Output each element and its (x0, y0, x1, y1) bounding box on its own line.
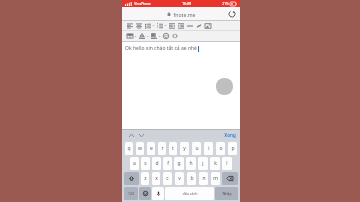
button[interactable]: z (141, 172, 149, 185)
staticText: fnote.me (173, 11, 196, 18)
button[interactable]: 123 (124, 187, 138, 200)
button[interactable]: ALIGN_LEFT (125, 21, 134, 30)
staticText: i (208, 145, 210, 152)
staticText: 16:09 (182, 1, 191, 6)
staticText: e (150, 145, 153, 152)
staticText: l (226, 160, 228, 167)
button[interactable]: j (198, 157, 208, 170)
button[interactable]: LIST_BULLET (143, 21, 152, 30)
staticText: g (177, 160, 181, 167)
button[interactable]: INDENT_R (176, 21, 185, 30)
button[interactable]: CARET (134, 31, 137, 41)
staticText: Nhập (222, 191, 232, 196)
staticText: f (167, 160, 169, 167)
button[interactable]: Emoji (139, 187, 151, 200)
button[interactable]: Shift (124, 172, 139, 185)
button[interactable]: ALIGN_CENTER (134, 21, 143, 30)
button[interactable]: d (152, 157, 161, 170)
button[interactable]: w (136, 142, 144, 155)
staticText: VinaPhone (134, 2, 151, 6)
staticText: j (202, 160, 204, 167)
button[interactable]: INDENT_L (167, 21, 176, 30)
button[interactable]: x (152, 172, 160, 185)
button[interactable]: m (211, 172, 220, 185)
button[interactable]: Nhập (215, 187, 238, 200)
button[interactable]: LIST_NUM (155, 21, 164, 30)
staticText: p (231, 145, 235, 152)
staticText: a (133, 160, 136, 167)
button[interactable]: p (228, 142, 237, 155)
staticText: d (155, 160, 159, 167)
button[interactable]: y (180, 142, 189, 155)
staticText: s (144, 160, 147, 167)
button[interactable]: k (210, 157, 220, 170)
staticText: t (172, 145, 174, 152)
button[interactable]: f (163, 157, 172, 170)
staticText: Ok hello xin chào tất cả ae nhé (125, 45, 197, 52)
button[interactable]: h (186, 157, 196, 170)
staticText: y (183, 145, 186, 152)
button[interactable]: Xong (223, 131, 237, 139)
button[interactable]: CARET (164, 21, 167, 30)
button[interactable]: s (141, 157, 150, 170)
button[interactable]: dấu cách (165, 187, 214, 200)
button[interactable]: c (163, 172, 172, 185)
button[interactable]: LINK (194, 21, 203, 30)
button[interactable]: u (192, 142, 201, 155)
button[interactable]: i (204, 142, 213, 155)
button[interactable]: l (222, 157, 232, 170)
button[interactable]: SMILEY (161, 31, 170, 41)
button[interactable]: b (187, 172, 196, 185)
button[interactable]: TEXT_COLOR (137, 31, 146, 41)
staticText: w (138, 145, 142, 152)
staticText: r (161, 145, 164, 152)
button[interactable]: Reload page (228, 10, 236, 18)
button[interactable]: r (158, 142, 166, 155)
button[interactable]: g (174, 157, 184, 170)
staticText: z (144, 175, 147, 182)
button[interactable]: CARET (146, 31, 149, 41)
staticText: b (190, 175, 194, 182)
button[interactable]: a (130, 157, 139, 170)
button[interactable]: e (147, 142, 155, 155)
button[interactable]: DASH (185, 21, 194, 30)
staticText: dấu cách (182, 191, 198, 196)
button[interactable]: t (169, 142, 177, 155)
button[interactable]: o (216, 142, 225, 155)
button[interactable]: Backspace (222, 172, 238, 185)
button[interactable]: Previous field (126, 130, 136, 140)
button[interactable]: TABLE (125, 31, 134, 41)
staticText: x (155, 175, 158, 182)
staticText: 123 (128, 191, 134, 196)
button[interactable]: Dictation (152, 187, 164, 200)
staticText: k (214, 160, 217, 167)
staticText: v (178, 175, 181, 182)
button[interactable]: q (125, 142, 133, 155)
staticText: c (166, 175, 169, 182)
staticText: u (195, 145, 199, 152)
button[interactable]: FILL_COLOR (149, 31, 158, 41)
staticText: o (219, 145, 223, 152)
button[interactable]: v (175, 172, 184, 185)
button[interactable]: CARET (158, 31, 161, 41)
button[interactable]: n (199, 172, 208, 185)
button[interactable]: CODE (170, 31, 179, 41)
staticText: q (127, 145, 131, 152)
button[interactable]: IMAGE (203, 21, 212, 30)
staticText: m (213, 175, 218, 182)
staticText: 21% (222, 2, 229, 6)
staticText: n (202, 175, 206, 182)
staticText: h (189, 160, 193, 167)
button[interactable]: Next field (136, 130, 146, 140)
button[interactable]: CARET (152, 21, 155, 30)
staticText: Xong (224, 132, 236, 138)
